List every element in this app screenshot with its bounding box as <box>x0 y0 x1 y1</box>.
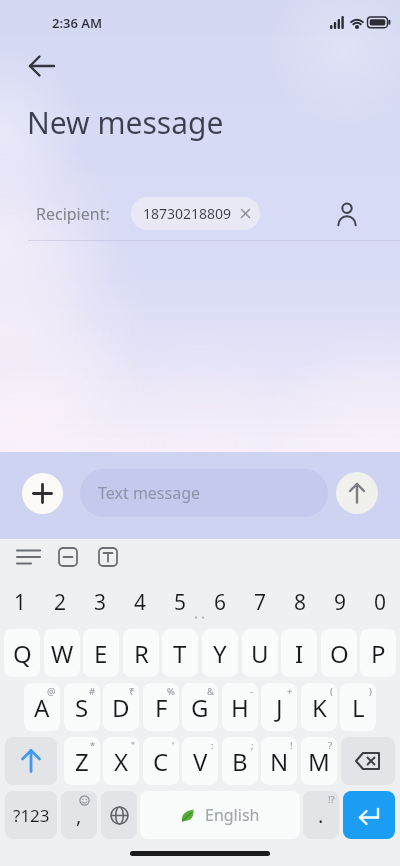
staticText: Q <box>13 637 32 670</box>
button[interactable]: . <box>303 791 339 839</box>
button[interactable]: ?123 <box>5 791 57 839</box>
button[interactable]: U <box>242 629 278 677</box>
button[interactable]: C <box>143 737 179 785</box>
staticText: B <box>232 745 248 778</box>
button[interactable]: 4 <box>120 582 160 622</box>
button[interactable]: 18730218809 <box>131 197 260 230</box>
staticText: 2:36 AM <box>52 14 103 32</box>
staticText: W <box>51 637 74 670</box>
button[interactable]: Z <box>64 737 100 785</box>
button[interactable]: I <box>281 629 317 677</box>
staticText: . <box>318 802 324 829</box>
staticText: 5 <box>174 588 187 617</box>
staticText: S <box>75 691 89 724</box>
button[interactable] <box>336 472 378 514</box>
staticText: N <box>270 745 289 778</box>
staticText: ?123 <box>13 804 50 827</box>
button[interactable]: M <box>301 737 337 785</box>
button[interactable]: R <box>123 629 159 677</box>
staticText: I <box>295 637 304 670</box>
button[interactable]: Text message <box>80 469 328 517</box>
staticText: 6 <box>214 588 227 617</box>
button[interactable]: G <box>182 683 218 731</box>
staticText: 2 <box>54 588 67 617</box>
button[interactable]: , <box>61 791 97 839</box>
button[interactable]: L <box>340 683 376 731</box>
button[interactable]: S <box>64 683 100 731</box>
button[interactable]: 9 <box>320 582 360 622</box>
staticText: 1 <box>14 588 27 617</box>
staticText: 4 <box>134 588 147 617</box>
button[interactable] <box>343 791 395 839</box>
button[interactable] <box>341 737 395 785</box>
button[interactable]: H <box>222 683 258 731</box>
staticText: 8 <box>294 588 307 617</box>
staticText: ( <box>330 685 333 698</box>
staticText: !? <box>328 793 335 806</box>
button[interactable] <box>5 737 57 785</box>
staticText: M <box>308 745 330 778</box>
button[interactable] <box>22 473 63 514</box>
staticText: K <box>312 691 327 724</box>
button[interactable]: T <box>162 629 198 677</box>
button[interactable]: N <box>261 737 297 785</box>
staticText: 0 <box>374 588 387 617</box>
staticText: ? <box>328 739 333 752</box>
button[interactable] <box>101 791 137 839</box>
staticText: # <box>89 685 96 698</box>
button[interactable]: 0 <box>360 582 400 622</box>
staticText: ₹ <box>129 685 135 698</box>
staticText: J <box>276 691 283 724</box>
staticText: " <box>131 739 135 752</box>
staticText: D <box>112 691 130 724</box>
button[interactable]: 8 <box>280 582 320 622</box>
staticText: H <box>231 691 249 724</box>
staticText: L <box>352 691 365 724</box>
button[interactable] <box>14 543 42 571</box>
staticText: O <box>330 637 349 670</box>
staticText: ! <box>290 739 293 752</box>
staticText: F <box>155 691 168 724</box>
button[interactable]: E <box>83 629 119 677</box>
button[interactable]: B <box>222 737 258 785</box>
button[interactable]: 7 <box>240 582 280 622</box>
button[interactable]: K <box>301 683 337 731</box>
staticText: 3 <box>94 588 107 617</box>
staticText: U <box>251 637 269 670</box>
staticText: ; <box>251 739 254 752</box>
button[interactable]: 2 <box>40 582 80 622</box>
button[interactable]: O <box>321 629 357 677</box>
staticText: + <box>287 685 293 698</box>
button[interactable]: Y <box>202 629 238 677</box>
button[interactable] <box>54 543 82 571</box>
button[interactable] <box>94 543 122 571</box>
button[interactable]: J <box>261 683 297 731</box>
staticText: A <box>34 691 50 724</box>
staticText: G <box>191 691 209 724</box>
button[interactable]: F <box>143 683 179 731</box>
button[interactable]: V <box>182 737 218 785</box>
staticText: X <box>114 745 129 778</box>
button[interactable]: 6 <box>200 582 240 622</box>
button[interactable]: D <box>103 683 139 731</box>
staticText: : <box>211 739 214 752</box>
staticText: ' <box>172 739 175 752</box>
staticText: @ <box>47 685 56 698</box>
staticText: 9 <box>334 588 347 617</box>
staticText: Recipient: <box>36 203 110 225</box>
button[interactable]: 5 <box>160 582 200 622</box>
staticText: E <box>94 637 108 670</box>
button[interactable] <box>330 197 363 230</box>
staticText: 7 <box>254 588 267 617</box>
button[interactable]: A <box>24 683 60 731</box>
staticText: R <box>134 637 149 670</box>
button[interactable]: Q <box>4 629 40 677</box>
button[interactable]: English <box>140 791 300 839</box>
button[interactable] <box>24 50 60 82</box>
staticText: 18730218809 <box>143 204 232 223</box>
button[interactable]: 1 <box>0 582 40 622</box>
button[interactable]: 3 <box>80 582 120 622</box>
button[interactable]: W <box>44 629 80 677</box>
button[interactable]: X <box>103 737 139 785</box>
button[interactable]: P <box>360 629 396 677</box>
